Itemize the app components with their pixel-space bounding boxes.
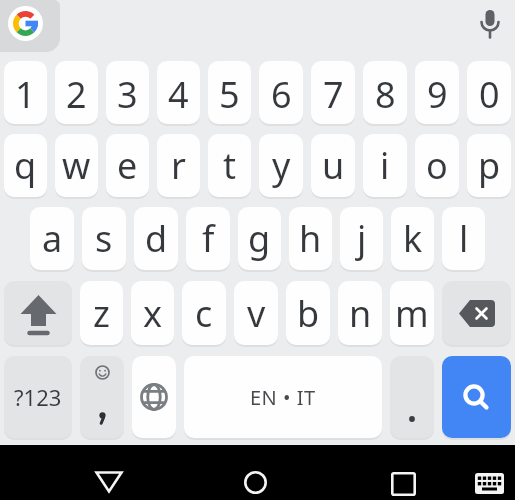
- staticText: e: [117, 141, 138, 190]
- button[interactable]: w: [55, 134, 98, 197]
- staticText: n: [349, 289, 372, 338]
- button[interactable]: l: [442, 207, 485, 270]
- button[interactable]: z: [80, 281, 123, 345]
- staticText: p: [478, 141, 501, 190]
- staticText: h: [299, 214, 322, 263]
- button[interactable]: e: [106, 134, 149, 197]
- staticText: EN • IT: [250, 384, 316, 411]
- button[interactable]: s: [82, 207, 126, 270]
- button[interactable]: b: [286, 281, 330, 345]
- staticText: b: [297, 289, 320, 338]
- staticText: m: [395, 289, 429, 338]
- button[interactable]: v: [234, 281, 278, 345]
- button[interactable]: 3: [106, 61, 149, 124]
- button[interactable]: a: [30, 207, 74, 270]
- staticText: j: [357, 214, 367, 263]
- staticText: 1: [15, 70, 36, 119]
- button[interactable]: EN • IT: [184, 356, 382, 438]
- staticText: f: [202, 214, 215, 263]
- staticText: c: [195, 289, 213, 338]
- button[interactable]: k: [391, 207, 434, 270]
- button[interactable]: m: [390, 281, 434, 345]
- staticText: y: [272, 141, 291, 190]
- staticText: v: [247, 289, 266, 338]
- button[interactable]: t: [208, 134, 251, 197]
- button[interactable]: x: [131, 281, 174, 345]
- staticText: w: [62, 141, 91, 190]
- button[interactable]: 6: [259, 61, 303, 124]
- button[interactable]: r: [157, 134, 200, 197]
- staticText: 9: [427, 70, 448, 119]
- button[interactable]: c: [182, 281, 226, 345]
- staticText: s: [95, 214, 113, 263]
- button[interactable]: 7: [311, 61, 355, 124]
- staticText: x: [143, 289, 163, 338]
- staticText: 5: [219, 70, 240, 119]
- button[interactable]: 9: [415, 61, 459, 124]
- staticText: g: [248, 214, 271, 263]
- button[interactable]: n: [338, 281, 382, 345]
- button[interactable]: h: [289, 207, 332, 270]
- button[interactable]: 8: [363, 61, 407, 124]
- staticText: l: [459, 214, 469, 263]
- button[interactable]: [475, 473, 504, 494]
- button[interactable]: 0: [467, 61, 511, 124]
- button[interactable]: y: [259, 134, 303, 197]
- staticText: 0: [479, 70, 500, 119]
- button[interactable]: o: [415, 134, 459, 197]
- staticText: k: [403, 214, 423, 263]
- button[interactable]: g: [238, 207, 281, 270]
- button[interactable]: [442, 281, 511, 345]
- button[interactable]: 5: [208, 61, 251, 124]
- staticText: o: [426, 141, 448, 190]
- button[interactable]: [244, 471, 267, 494]
- staticText: q: [14, 141, 37, 190]
- button[interactable]: i: [363, 134, 407, 197]
- button[interactable]: p: [467, 134, 511, 197]
- button[interactable]: [442, 356, 511, 438]
- staticText: a: [42, 214, 63, 263]
- button[interactable]: [478, 9, 502, 39]
- staticText: 4: [168, 70, 189, 119]
- staticText: 2: [66, 70, 87, 119]
- button[interactable]: [4, 281, 72, 345]
- staticText: t: [223, 141, 236, 190]
- button[interactable]: j: [340, 207, 383, 270]
- button[interactable]: [390, 356, 434, 438]
- staticText: r: [171, 141, 186, 190]
- button[interactable]: [391, 472, 416, 496]
- button[interactable]: 1: [4, 61, 47, 124]
- button[interactable]: ?123: [4, 356, 72, 438]
- button[interactable]: q: [4, 134, 47, 197]
- button[interactable]: d: [134, 207, 178, 270]
- button[interactable]: [132, 356, 176, 438]
- staticText: z: [93, 289, 110, 338]
- staticText: 7: [323, 70, 344, 119]
- button[interactable]: [0, 0, 60, 52]
- staticText: u: [322, 141, 345, 190]
- staticText: 3: [117, 70, 138, 119]
- staticText: ?123: [14, 382, 62, 412]
- button[interactable]: u: [311, 134, 355, 197]
- staticText: i: [380, 141, 390, 190]
- button[interactable]: 4: [157, 61, 200, 124]
- button[interactable]: [80, 356, 124, 438]
- staticText: 8: [375, 70, 396, 119]
- button[interactable]: 2: [55, 61, 98, 124]
- button[interactable]: [95, 471, 123, 493]
- button[interactable]: f: [186, 207, 230, 270]
- staticText: 6: [271, 70, 292, 119]
- staticText: d: [145, 214, 168, 263]
